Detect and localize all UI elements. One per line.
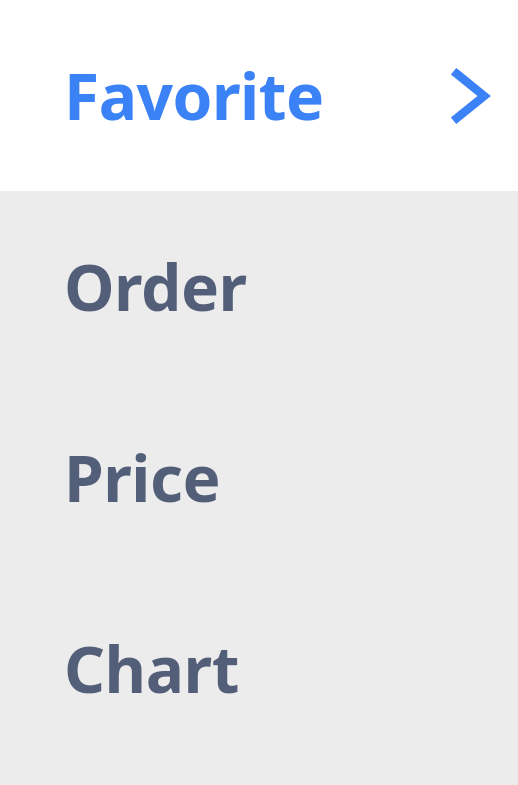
staticText: Order: [64, 243, 247, 330]
other: Open Favorite: [455, 72, 486, 120]
staticText: Chart: [64, 625, 239, 712]
staticText: Price: [64, 434, 221, 521]
button[interactable]: Favorite: [0, 0, 518, 191]
button[interactable]: Order: [0, 191, 518, 382]
button[interactable]: Chart: [0, 573, 518, 764]
staticText: Favorite: [64, 52, 324, 139]
button[interactable]: Price: [0, 382, 518, 573]
